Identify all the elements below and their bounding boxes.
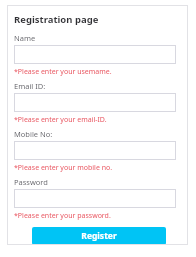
staticText: Mobile No: — [14, 129, 53, 139]
staticText: Password — [14, 177, 48, 187]
button[interactable] — [14, 189, 176, 208]
button[interactable] — [14, 45, 176, 64]
staticText: Email ID: — [14, 81, 46, 91]
staticText: *Please enter your usemame. — [14, 67, 112, 77]
button[interactable]: Register — [32, 227, 166, 245]
staticText: *Please enter your mobile no. — [14, 163, 113, 173]
staticText: *Please enter your password. — [14, 211, 111, 221]
staticText: Name — [14, 33, 36, 43]
button[interactable] — [14, 141, 176, 160]
staticText: Registration page — [14, 13, 99, 26]
button[interactable] — [14, 93, 176, 112]
staticText: Register — [81, 230, 117, 242]
staticText: *Please enter your email-ID. — [14, 115, 107, 125]
